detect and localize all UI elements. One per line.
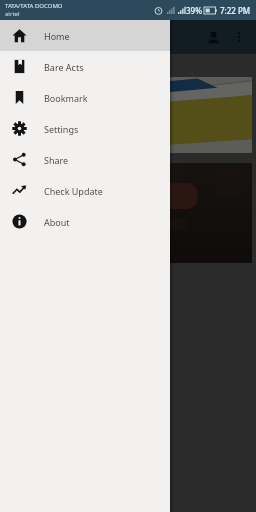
staticText: 39% (186, 5, 202, 16)
staticText: TATA/TATA DOCOMO (5, 2, 63, 10)
staticText: Home (44, 30, 70, 42)
button[interactable]: Check Update (0, 175, 170, 206)
button[interactable]: About (0, 206, 170, 237)
staticText: Share (44, 154, 69, 166)
button[interactable]: Settings (0, 113, 170, 144)
button[interactable]: : Election Laws (4, 77, 252, 153)
staticText: About (44, 216, 70, 228)
staticText: Bookmark (44, 92, 88, 104)
staticText: Check Update (44, 185, 103, 197)
button[interactable]: Court (4, 163, 252, 263)
button[interactable]: Bare Acts (0, 51, 170, 82)
staticText: : Election Laws (6, 108, 87, 123)
staticText: Bare Acts (44, 61, 84, 73)
button[interactable]: Home (0, 20, 170, 51)
button[interactable]: Share (0, 144, 170, 175)
button[interactable]: Bookmark (0, 82, 170, 113)
button[interactable]: More options (228, 26, 250, 48)
staticText: airtel (5, 10, 20, 18)
staticText: NEW POINT (6, 58, 70, 73)
button[interactable]: Account (200, 24, 226, 50)
staticText: 7:22 PM (220, 5, 251, 16)
staticText: Settings (44, 123, 79, 135)
